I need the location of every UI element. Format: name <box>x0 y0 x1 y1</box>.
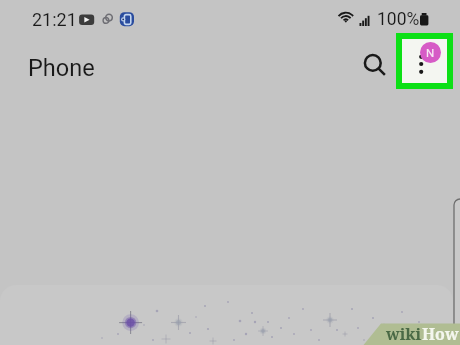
button[interactable]: Search <box>352 44 392 84</box>
button[interactable]: More options <box>402 39 447 83</box>
staticText: 100% <box>377 9 420 30</box>
staticText: N <box>426 46 435 59</box>
staticText: 21:21 <box>32 9 77 30</box>
staticText: wiki <box>386 323 422 345</box>
staticText: Phone <box>28 54 95 82</box>
staticText: How <box>422 323 459 345</box>
